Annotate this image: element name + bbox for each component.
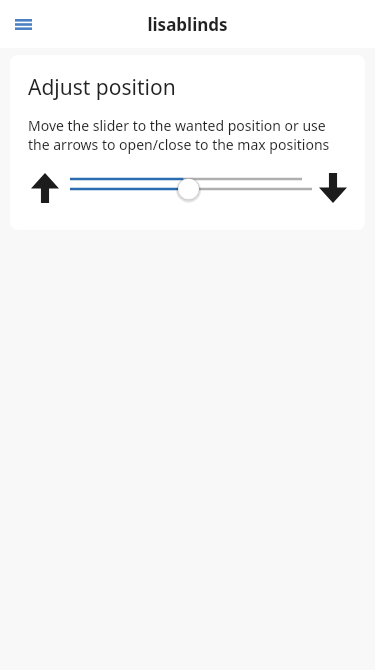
staticText: lisablinds: [147, 13, 228, 36]
staticText: Adjust position: [28, 73, 176, 102]
button[interactable]: Open navigation menu: [6, 7, 40, 41]
staticText: Move the slider to the wanted position o…: [28, 116, 345, 154]
button[interactable]: Open to max position: [24, 167, 66, 209]
button[interactable]: [66, 166, 312, 210]
button[interactable]: Close to max position: [312, 167, 354, 209]
